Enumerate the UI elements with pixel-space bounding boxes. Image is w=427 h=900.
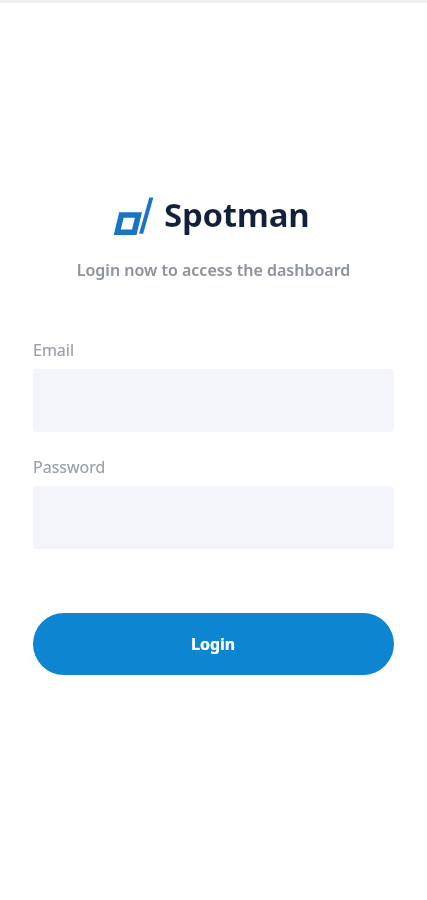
staticText: Email: [33, 339, 75, 361]
staticText: Login now to access the dashboard: [0, 259, 427, 281]
staticText: Password: [33, 456, 106, 478]
staticText: Login: [191, 633, 236, 655]
staticText: Spotman: [164, 192, 310, 237]
button[interactable]: Login: [33, 613, 394, 675]
